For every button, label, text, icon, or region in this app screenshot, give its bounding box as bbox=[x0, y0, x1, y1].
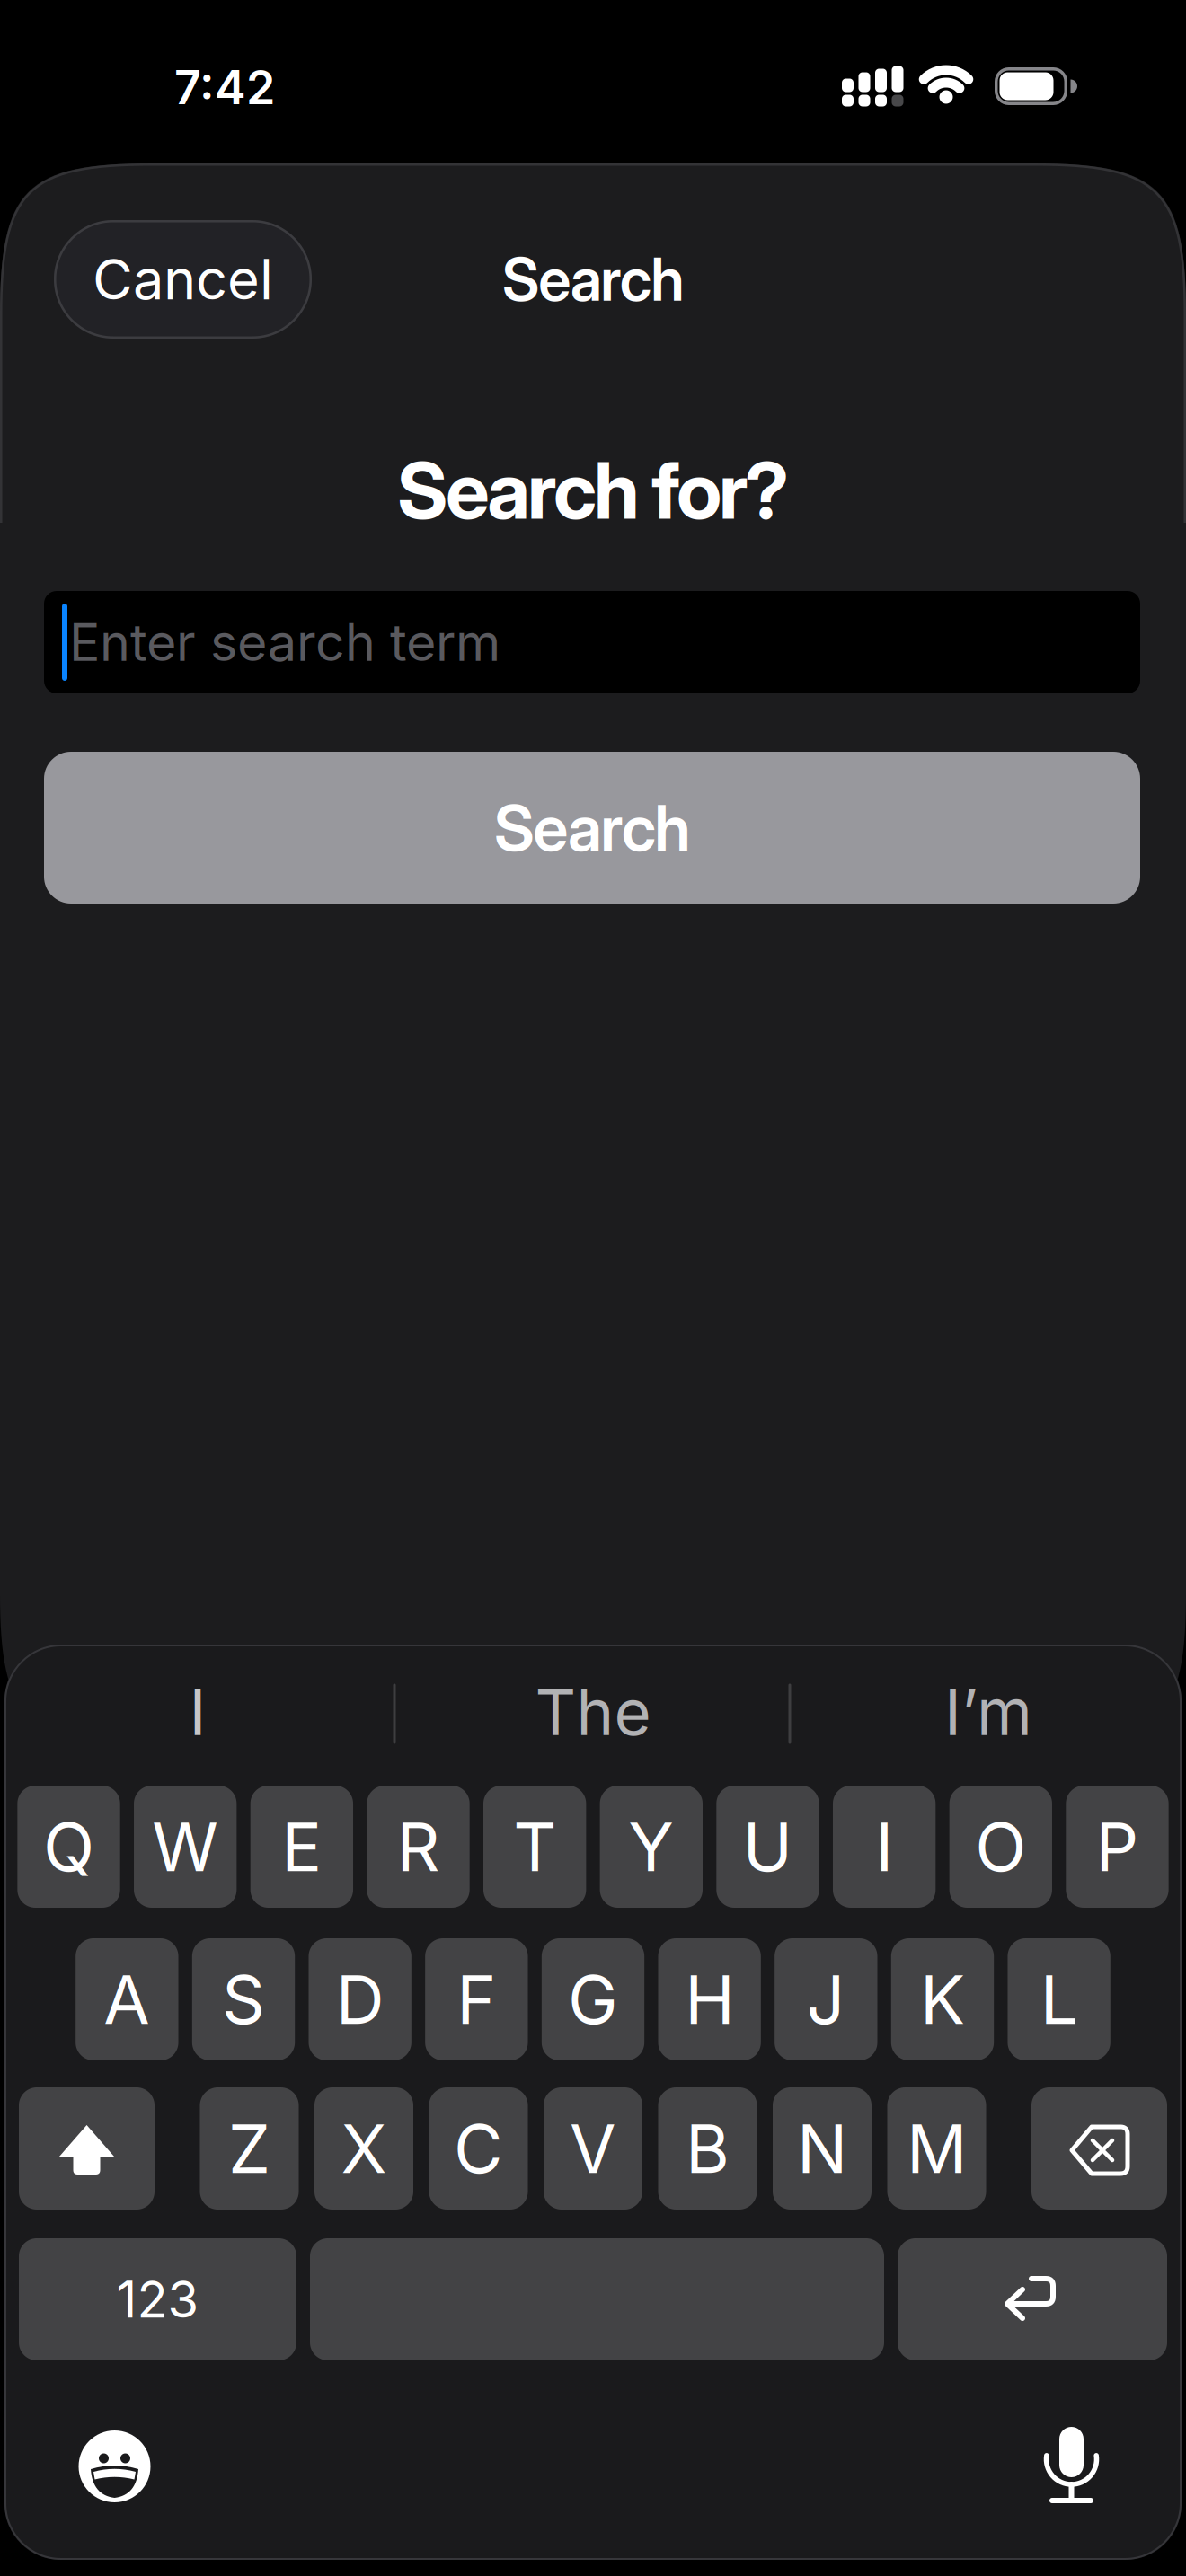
staticText: Cancel bbox=[93, 246, 273, 313]
button[interactable]: S bbox=[192, 1938, 295, 2060]
button[interactable]: B bbox=[658, 2087, 757, 2210]
staticText: I’m bbox=[944, 1674, 1032, 1750]
staticText: A bbox=[104, 1959, 150, 2040]
button[interactable]: P bbox=[1066, 1786, 1169, 1908]
staticText: L bbox=[1040, 1959, 1078, 2040]
button[interactable]: Cancel bbox=[54, 220, 312, 339]
button[interactable]: N bbox=[773, 2087, 872, 2210]
button[interactable]: H bbox=[658, 1938, 761, 2060]
button[interactable]: X bbox=[314, 2087, 413, 2210]
staticText: E bbox=[282, 1806, 322, 1887]
staticText: M bbox=[907, 2108, 967, 2189]
staticText: R bbox=[397, 1806, 440, 1887]
button[interactable]: L bbox=[1008, 1938, 1110, 2060]
staticText: Y bbox=[628, 1806, 674, 1887]
staticText: F bbox=[457, 1959, 496, 2040]
staticText: I bbox=[875, 1806, 893, 1887]
staticText: S bbox=[222, 1959, 265, 2040]
button[interactable]: A bbox=[76, 1938, 178, 2060]
button[interactable]: Search bbox=[44, 752, 1140, 904]
staticText: V bbox=[570, 2108, 616, 2189]
staticText: X bbox=[341, 2108, 387, 2189]
staticText: G bbox=[568, 1959, 618, 2040]
button[interactable]: U bbox=[716, 1786, 819, 1908]
button[interactable]: V bbox=[544, 2087, 642, 2210]
button[interactable]: Emoji bbox=[65, 2417, 164, 2516]
staticText: U bbox=[743, 1806, 793, 1887]
staticText: Search bbox=[502, 244, 684, 315]
staticText: K bbox=[920, 1959, 965, 2040]
button[interactable]: M bbox=[887, 2087, 986, 2210]
staticText: The bbox=[535, 1674, 651, 1750]
button[interactable]: Dictation bbox=[1022, 2411, 1121, 2519]
button[interactable]: Z bbox=[200, 2087, 299, 2210]
staticText: T bbox=[513, 1806, 556, 1887]
staticText: P bbox=[1096, 1806, 1139, 1887]
staticText: Search for? bbox=[397, 443, 789, 538]
staticText: 123 bbox=[116, 2269, 199, 2330]
button[interactable]: K bbox=[891, 1938, 994, 2060]
button[interactable]: Return bbox=[898, 2238, 1167, 2360]
button[interactable]: E bbox=[250, 1786, 353, 1908]
button[interactable]: The bbox=[404, 1663, 782, 1761]
staticText: J bbox=[807, 1959, 845, 2040]
button[interactable]: C bbox=[429, 2087, 528, 2210]
button[interactable]: J bbox=[775, 1938, 877, 2060]
button[interactable]: I’m bbox=[800, 1663, 1177, 1761]
button[interactable]: G bbox=[542, 1938, 644, 2060]
button[interactable]: O bbox=[949, 1786, 1052, 1908]
staticText: Search bbox=[494, 789, 690, 866]
button[interactable]: Shift bbox=[19, 2087, 155, 2210]
staticText: O bbox=[975, 1806, 1026, 1887]
button[interactable]: Delete bbox=[1031, 2087, 1167, 2210]
staticText: D bbox=[336, 1959, 384, 2040]
button[interactable]: W bbox=[134, 1786, 237, 1908]
button[interactable]: I bbox=[9, 1663, 386, 1761]
button[interactable]: Enter search term bbox=[44, 591, 1140, 693]
staticText: I bbox=[189, 1674, 206, 1750]
staticText: C bbox=[454, 2108, 503, 2189]
button[interactable]: I bbox=[833, 1786, 936, 1908]
button[interactable]: D bbox=[309, 1938, 411, 2060]
staticText: Q bbox=[43, 1806, 94, 1887]
button[interactable]: Numbers bbox=[19, 2238, 296, 2360]
button[interactable]: F bbox=[425, 1938, 528, 2060]
staticText: B bbox=[686, 2108, 730, 2189]
button[interactable]: R bbox=[367, 1786, 470, 1908]
staticText: W bbox=[152, 1806, 219, 1887]
button[interactable]: T bbox=[483, 1786, 586, 1908]
button[interactable]: Space bbox=[310, 2238, 884, 2360]
button[interactable]: Y bbox=[600, 1786, 703, 1908]
staticText: N bbox=[797, 2108, 847, 2189]
staticText: Enter search term bbox=[69, 611, 500, 673]
staticText: Z bbox=[228, 2108, 270, 2189]
button[interactable]: Q bbox=[17, 1786, 120, 1908]
staticText: H bbox=[685, 1959, 734, 2040]
staticText: 7:42 bbox=[174, 59, 275, 115]
